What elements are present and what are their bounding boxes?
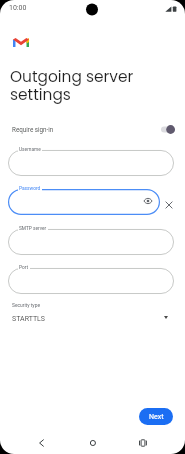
staticText: Username — [19, 147, 41, 153]
other: Gmail — [13, 38, 29, 47]
button[interactable]: Next — [139, 408, 173, 425]
button[interactable]: Require sign-in — [0, 119, 185, 140]
staticText: Next — [149, 413, 164, 421]
button[interactable]: Back — [31, 432, 53, 454]
staticText: Require sign-in — [12, 126, 54, 133]
staticText: Security type — [12, 302, 40, 308]
button[interactable]: Security type — [0, 298, 185, 328]
button[interactable]: Port — [8, 268, 174, 294]
staticText: Password — [19, 186, 41, 192]
button[interactable]: Recent apps — [132, 432, 154, 454]
button[interactable]: SMTP server — [8, 229, 174, 255]
staticText: SMTP server — [19, 226, 47, 232]
button[interactable]: Clear text — [164, 200, 174, 210]
button[interactable]: Home — [82, 432, 104, 454]
button[interactable]: Password — [8, 189, 160, 215]
button[interactable]: Username — [8, 150, 174, 176]
staticText: Outgoing server settings — [10, 66, 160, 105]
other: Show password — [144, 198, 152, 204]
staticText: Port — [19, 265, 29, 271]
staticText: 10:00 — [9, 4, 27, 12]
staticText: STARTTLS — [12, 315, 46, 323]
